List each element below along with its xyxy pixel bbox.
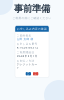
staticText: 事前準備 [14, 3, 50, 14]
staticText: 山田 太郎 様 [16, 37, 33, 41]
staticText: ご利用の前にご確認ください [12, 16, 51, 20]
button[interactable]: 戻る [26, 72, 31, 75]
staticText: お支払い方法 [16, 59, 34, 62]
staticText: A-1024-88312 [16, 46, 38, 49]
staticText: お申し込み内容の確認 [17, 27, 47, 30]
staticText: お申し込み番号 [16, 42, 37, 45]
button[interactable]: 申込 [33, 72, 38, 75]
staticText: 申込 [34, 70, 37, 77]
staticText: クレジットカード [16, 63, 37, 69]
staticText: ご契約者名 [16, 34, 31, 37]
staticText: 戻る [27, 70, 30, 77]
staticText: ご利用開始日 [16, 51, 34, 54]
staticText: 2024年4月1日 [16, 54, 37, 58]
